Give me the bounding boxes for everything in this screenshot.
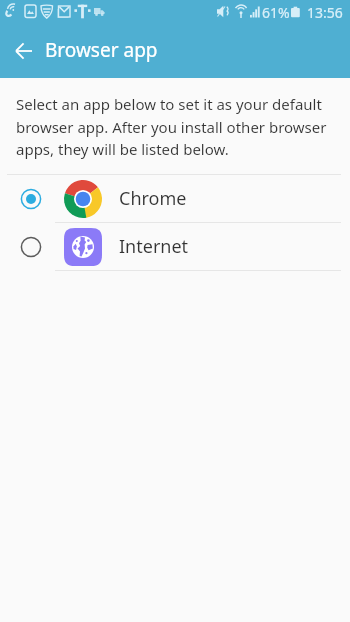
staticText: Chrome xyxy=(119,186,187,211)
staticText: Internet xyxy=(119,234,189,259)
button[interactable]: Navigate up xyxy=(0,27,48,75)
staticText: 61% xyxy=(262,3,290,22)
button[interactable]: Internet xyxy=(0,223,350,270)
button[interactable]: Chrome xyxy=(0,175,350,222)
staticText: Browser app xyxy=(45,37,158,63)
staticText: 13:56 xyxy=(307,3,343,22)
staticText: Select an app below to set it as your de… xyxy=(16,94,332,159)
